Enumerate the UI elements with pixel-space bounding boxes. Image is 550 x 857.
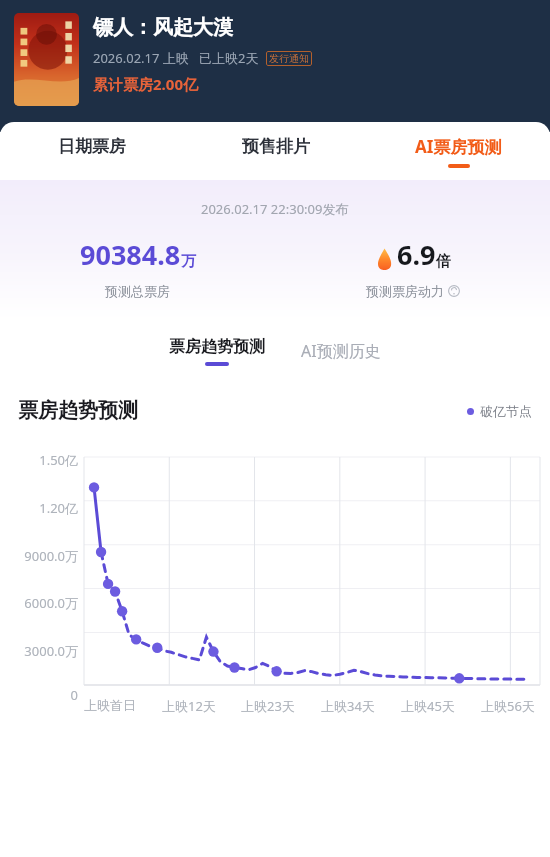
button[interactable]: AI预测历史 [297,334,385,368]
staticText: 2026.02.17 22:30:09发布 [201,200,349,218]
staticText: 发行通知 [269,52,309,65]
staticText: 9000.0万 [0,547,78,565]
staticText: 上映23天 [241,697,295,715]
staticText: AI票房预测 [415,135,502,158]
staticText: 0 [0,686,78,704]
staticText: 上映45天 [401,697,455,715]
button[interactable]: 日期票房 [0,122,184,180]
staticText: 预测总票房 [105,283,170,299]
staticText: 日期票房 [58,136,126,157]
staticText: 已上映2天 [199,49,259,67]
staticText: 镖人：风起大漠 [93,15,233,40]
staticText: 90384.8 [80,236,181,273]
staticText: 上映56天 [481,697,535,715]
staticText: AI预测历史 [301,340,381,362]
staticText: 1.20亿 [0,499,78,517]
staticText: 票房趋势预测 [18,398,138,423]
staticText: 上映首日 [84,697,136,713]
staticText: 6000.0万 [0,594,78,612]
staticText: 万 [181,252,196,271]
staticText: 3000.0万 [0,642,78,660]
button[interactable]: 预售排片 [184,122,367,180]
staticText: 6.9 [397,236,436,273]
button[interactable]: 预测票房动力 [366,283,460,299]
staticText: 预测票房动力 [366,283,444,299]
button[interactable]: 破亿节点 [467,403,532,419]
staticText: 破亿节点 [480,403,532,419]
button[interactable]: AI票房预测 [367,122,550,180]
staticText: 2026.02.17 上映 [93,49,189,67]
staticText: 上映34天 [321,697,375,715]
button[interactable]: 票房趋势预测 [165,337,269,366]
staticText: 票房趋势预测 [169,337,265,357]
staticText: 预售排片 [242,136,310,157]
button[interactable]: 电影海报 [14,13,79,106]
staticText: 上映12天 [162,697,216,715]
button[interactable]: 发行通知 [266,51,312,66]
staticText: 倍 [436,252,451,271]
staticText: 累计票房2.00亿 [93,74,198,94]
staticText: 1.50亿 [0,451,78,469]
